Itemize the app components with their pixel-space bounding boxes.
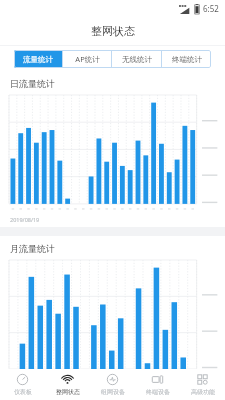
staticText: 组网设备	[101, 388, 125, 396]
staticText: 2019/08/19	[10, 216, 40, 223]
button[interactable]: 仪表板	[0, 369, 45, 400]
staticText: 6:52	[203, 3, 219, 14]
staticText: 终端统计	[172, 55, 202, 64]
button[interactable]: AP统计	[63, 50, 111, 68]
staticText: 日流量统计	[10, 78, 55, 89]
staticText: 高级功能	[191, 388, 215, 396]
staticText: 整网状态	[91, 24, 135, 38]
button[interactable]: 无线统计	[112, 50, 161, 68]
staticText: 无线统计	[122, 55, 152, 64]
staticText: 整网状态	[56, 388, 80, 396]
staticText: 仪表板	[14, 388, 32, 396]
staticText: AP统计	[75, 54, 100, 64]
button[interactable]: 整网状态	[45, 369, 90, 400]
button[interactable]: 组网设备	[90, 369, 135, 400]
staticText: 终端设备	[146, 388, 170, 396]
button[interactable]: 流量统计	[14, 50, 62, 68]
button[interactable]: 终端统计	[162, 50, 211, 68]
staticText: 流量统计	[23, 55, 53, 64]
staticText: 月流量统计	[10, 243, 55, 254]
button[interactable]: 高级功能	[180, 369, 225, 400]
button[interactable]: 终端设备	[135, 369, 180, 400]
